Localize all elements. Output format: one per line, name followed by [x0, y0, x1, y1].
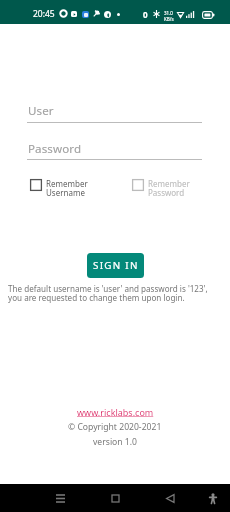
staticText: © Copyright 2020-2021 — [68, 421, 162, 433]
staticText: KB/s — [164, 16, 174, 22]
staticText: Remember Username — [46, 178, 88, 199]
button[interactable]: Remember Password — [132, 178, 190, 199]
staticText: The default username is 'user' and passw… — [8, 283, 208, 304]
staticText: Remember Password — [148, 178, 190, 199]
button[interactable]: SIGN IN — [87, 253, 144, 278]
button[interactable]: Remember Username — [30, 178, 88, 199]
button[interactable]: Accessibility menu — [198, 488, 228, 508]
staticText: version 1.0 — [93, 436, 137, 448]
button[interactable]: Back — [155, 489, 185, 508]
staticText: User — [28, 103, 54, 119]
button[interactable]: Home — [100, 489, 130, 508]
staticText: 20:45 — [33, 8, 55, 20]
staticText: 31.0 — [164, 10, 173, 16]
staticText: 0 — [143, 9, 148, 20]
staticText: SIGN IN — [93, 259, 139, 272]
button[interactable]: Recent apps — [45, 489, 75, 508]
staticText: Password — [28, 141, 82, 157]
button[interactable]: www.ricklabs.com — [77, 406, 154, 418]
